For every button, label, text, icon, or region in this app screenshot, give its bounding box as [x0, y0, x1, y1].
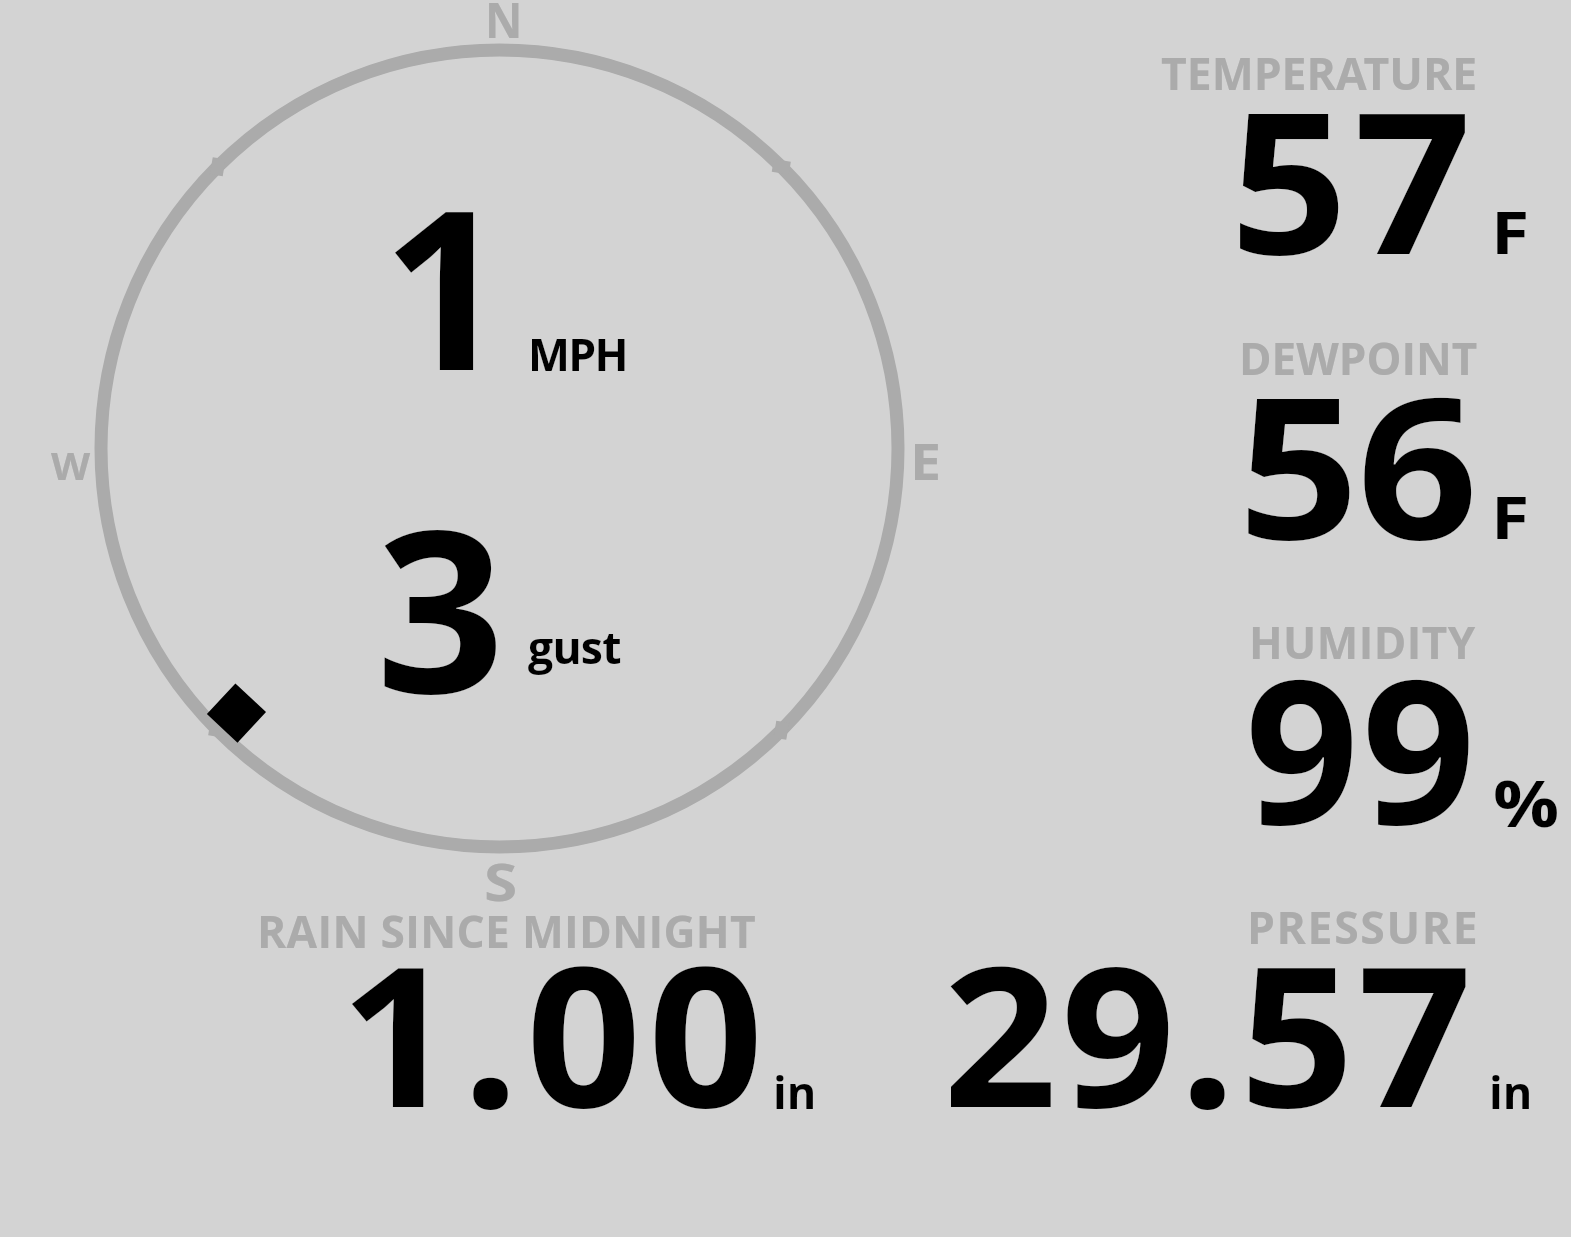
staticText: 29.57 — [943, 900, 1476, 1164]
button[interactable]: Wind direction dial, from the south west — [80, 30, 920, 870]
staticText: % — [1493, 758, 1560, 847]
staticText: MPH — [528, 323, 627, 384]
button[interactable]: Temperature 57 degrees Fahrenheit — [1150, 40, 1550, 265]
staticText: PRESSURE — [1247, 896, 1480, 957]
button[interactable]: Humidity 99 percent — [1150, 608, 1550, 833]
staticText: in — [773, 1061, 817, 1122]
staticText: 1.00 — [340, 900, 771, 1164]
staticText: 56 — [1238, 330, 1477, 597]
staticText: TEMPERATURE — [1161, 42, 1478, 103]
button[interactable]: Dew point 56 degrees Fahrenheit — [1150, 325, 1550, 550]
staticText: 99 — [1245, 611, 1479, 882]
staticText: S — [484, 845, 518, 916]
staticText: F — [1491, 190, 1530, 271]
staticText: RAIN SINCE MIDNIGHT — [257, 901, 757, 961]
staticText: 57 — [1230, 45, 1479, 312]
staticText: 3 — [376, 452, 505, 759]
staticText: DEWPOINT — [1239, 328, 1478, 388]
staticText: 1 — [382, 134, 508, 434]
button[interactable]: Rain since midnight 1.00 inches — [250, 895, 830, 1120]
staticText: in — [1489, 1061, 1533, 1122]
staticText: HUMIDITY — [1249, 612, 1476, 672]
staticText: E — [910, 425, 942, 494]
button[interactable]: Pressure 29.57 inches — [935, 892, 1535, 1117]
staticText: gust — [528, 616, 621, 677]
staticText: F — [1491, 475, 1530, 556]
staticText: N — [485, 0, 523, 53]
staticText: W — [51, 440, 91, 491]
